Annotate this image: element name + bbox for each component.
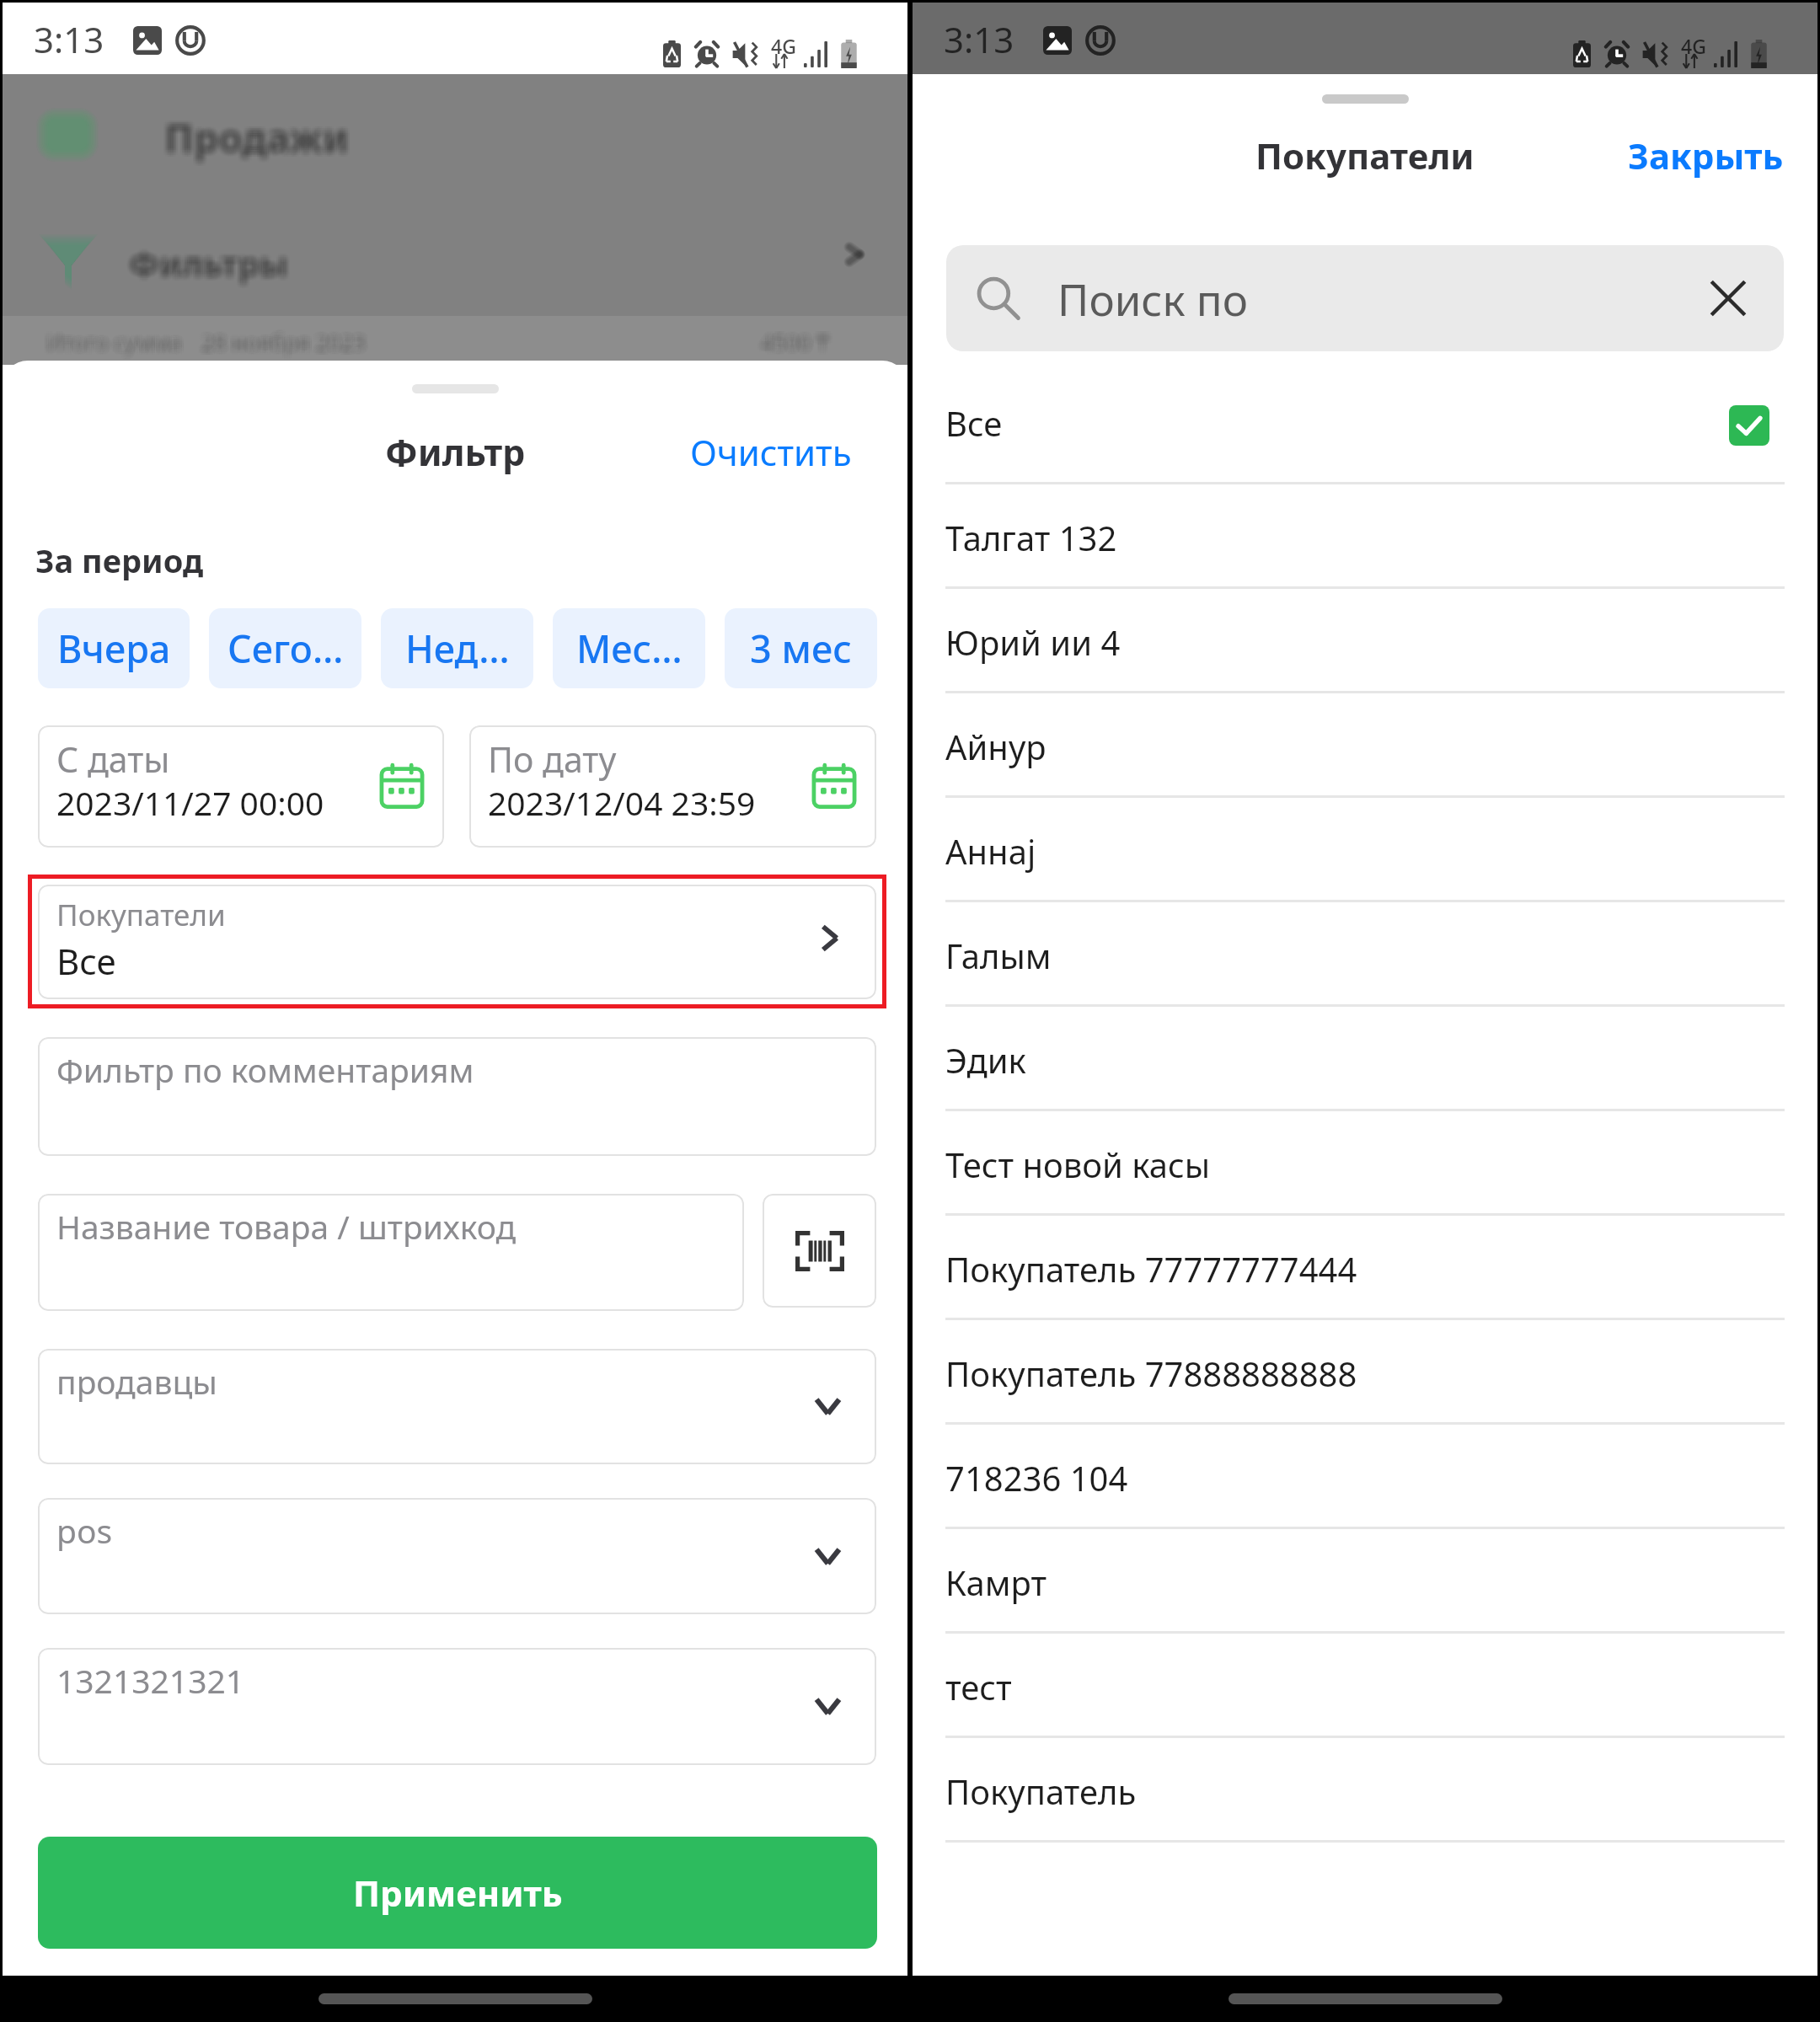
- staticText: Аннаj: [945, 828, 1036, 874]
- button[interactable]: Закрыть: [1603, 121, 1817, 190]
- button[interactable]: 718236 104: [913, 1425, 1817, 1529]
- staticText: Фильтры: [130, 243, 289, 288]
- staticText: 28 ноября 2023: [202, 326, 367, 356]
- button[interactable]: 3 мес: [725, 608, 877, 688]
- staticText: 4500 ₸: [760, 328, 828, 357]
- button[interactable]: Название товара / штрихкод: [38, 1194, 744, 1311]
- button[interactable]: По дату: [469, 725, 876, 848]
- button[interactable]: Нед…: [381, 608, 533, 688]
- button[interactable]: Все: [913, 380, 1817, 484]
- staticText: 28 ноября 2023: [202, 331, 367, 361]
- button[interactable]: Покупатель 77777777444: [913, 1216, 1817, 1320]
- staticText: Фильтр по комментариям: [56, 1047, 474, 1092]
- button[interactable]: Сего…: [209, 608, 361, 688]
- button[interactable]: Очистить: [665, 418, 907, 486]
- staticText: 4500 ₸: [760, 329, 828, 359]
- staticText: 28 ноября 2023: [206, 326, 370, 356]
- staticText: 4500 ₸: [763, 331, 832, 361]
- staticText: 4500 ₸: [758, 323, 827, 352]
- staticText: Продажи: [165, 110, 351, 163]
- staticText: Продажи: [165, 115, 351, 168]
- button[interactable]: Эдик: [913, 1007, 1817, 1111]
- button[interactable]: Поиск по: [946, 245, 1784, 351]
- button[interactable]: Галым: [913, 902, 1817, 1007]
- staticText: Фильтры: [125, 241, 284, 286]
- button[interactable]: pos: [38, 1498, 876, 1614]
- staticText: 28 ноября 2023: [206, 328, 370, 357]
- button[interactable]: Покупатель: [913, 1738, 1817, 1843]
- staticText: Итого сумма: [47, 328, 183, 357]
- staticText: Продажи: [169, 110, 354, 163]
- staticText: 4500 ₸: [760, 331, 828, 361]
- staticText: 28 ноября 2023: [199, 328, 363, 357]
- button[interactable]: С даты: [38, 725, 444, 848]
- button[interactable]: Фильтр по комментариям: [38, 1037, 876, 1156]
- staticText: Продажи: [160, 110, 345, 163]
- staticText: 28 ноября 2023: [197, 324, 361, 354]
- button[interactable]: Вчера: [38, 608, 190, 688]
- staticText: Фильтры: [126, 244, 286, 290]
- staticText: Продажи: [169, 109, 354, 162]
- staticText: Эдик: [945, 1037, 1026, 1083]
- staticText: 4500 ₸: [762, 323, 830, 352]
- staticText: Фильтры: [126, 241, 286, 286]
- staticText: Итого сумма: [45, 326, 181, 356]
- button[interactable]: Камрт: [913, 1529, 1817, 1634]
- staticText: Продажи: [163, 109, 349, 162]
- staticText: Покупатель 77777777444: [945, 1246, 1357, 1292]
- staticText: Фильтры: [133, 238, 292, 283]
- button[interactable]: 1321321321: [38, 1648, 876, 1765]
- staticText: Фильтры: [125, 243, 284, 288]
- button[interactable]: Применить: [38, 1837, 877, 1949]
- button[interactable]: продавцы: [38, 1349, 876, 1464]
- button[interactable]: Покупатель 77888888888: [913, 1320, 1817, 1425]
- staticText: 28 ноября 2023: [202, 323, 367, 352]
- staticText: Все: [56, 937, 116, 985]
- button[interactable]: Тест новой касы: [913, 1111, 1817, 1216]
- button[interactable]: Сканировать штрихкод: [763, 1194, 876, 1308]
- staticText: Продажи: [163, 115, 349, 168]
- staticText: 4500 ₸: [758, 326, 827, 356]
- button[interactable]: Юрий ии 4: [913, 589, 1817, 693]
- staticText: 28 ноября 2023: [204, 323, 368, 352]
- staticText: 4500 ₸: [758, 324, 827, 354]
- button[interactable]: Талгат 132: [913, 484, 1817, 589]
- staticText: Итого сумма: [47, 323, 183, 352]
- staticText: Итого сумма: [45, 331, 181, 361]
- staticText: 4500 ₸: [760, 324, 828, 354]
- staticText: 4500 ₸: [758, 328, 827, 357]
- staticText: Фильтры: [126, 239, 286, 285]
- button[interactable]: Айнур: [913, 693, 1817, 798]
- staticText: 28 ноября 2023: [201, 329, 365, 359]
- staticText: Итого сумма: [44, 328, 179, 357]
- staticText: Продажи: [165, 109, 351, 162]
- staticText: Итого сумма: [45, 328, 181, 357]
- staticText: Итого сумма: [51, 326, 186, 356]
- staticText: 4500 ₸: [757, 329, 825, 359]
- staticText: Итого сумма: [45, 323, 181, 352]
- staticText: Фильтры: [130, 241, 289, 286]
- staticText: Продажи: [163, 114, 349, 167]
- staticText: 28 ноября 2023: [204, 329, 368, 359]
- staticText: Продажи: [162, 112, 347, 165]
- button[interactable]: Аннаj: [913, 798, 1817, 902]
- staticText: Итого сумма: [42, 329, 178, 359]
- staticText: Покупатель 77888888888: [945, 1351, 1357, 1396]
- staticText: 28 ноября 2023: [199, 329, 363, 359]
- staticText: Покупатели: [56, 895, 226, 935]
- staticText: С даты: [56, 736, 170, 783]
- staticText: Юрий ии 4: [945, 619, 1121, 665]
- staticText: Продажи: [167, 112, 352, 165]
- button[interactable]: Покупатели: [38, 885, 876, 999]
- button[interactable]: Мес…: [553, 608, 705, 688]
- staticText: 4500 ₸: [758, 329, 827, 359]
- staticText: Продажи: [162, 115, 347, 168]
- staticText: По дату: [488, 736, 617, 783]
- button[interactable]: тест: [913, 1634, 1817, 1738]
- staticText: Фильтры: [128, 236, 287, 281]
- staticText: 28 ноября 2023: [197, 329, 361, 359]
- staticText: Фильтры: [133, 243, 292, 288]
- staticText: Фильтры: [126, 238, 286, 283]
- staticText: Фильтры: [131, 239, 291, 285]
- staticText: Итого сумма: [42, 324, 178, 354]
